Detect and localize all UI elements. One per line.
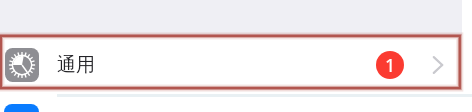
button[interactable]: Display & Brightness: [4, 104, 39, 112]
staticText: 通用: [57, 53, 95, 77]
staticText: 1: [385, 53, 396, 78]
button[interactable]: 通用: [0, 36, 462, 94]
